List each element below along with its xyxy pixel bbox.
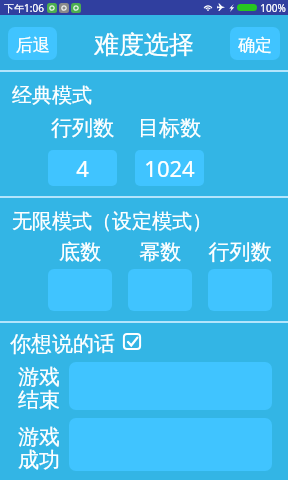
- staticText: 幂数: [128, 239, 192, 265]
- staticText: 游戏 结束: [18, 364, 60, 413]
- staticText: 下午1:06: [4, 1, 44, 15]
- staticText: 确定: [238, 35, 272, 56]
- staticText: 难度选择: [94, 29, 194, 60]
- staticText: 底数: [48, 239, 112, 265]
- staticText: 经典模式: [12, 83, 92, 108]
- button[interactable]: 4: [48, 150, 117, 186]
- staticText: 你想说的话: [10, 331, 115, 357]
- staticText: 4: [76, 153, 89, 183]
- staticText: 目标数: [135, 115, 204, 141]
- staticText: 100%: [260, 1, 286, 15]
- staticText: 后退: [16, 35, 50, 56]
- button[interactable]: 确定: [230, 27, 280, 60]
- staticText: 行列数: [48, 115, 117, 141]
- button[interactable]: Enable custom messages: [122, 331, 142, 351]
- staticText: 游戏 成功: [18, 424, 60, 473]
- staticText: 1024: [144, 153, 195, 183]
- staticText: 无限模式（设定模式）: [12, 209, 212, 234]
- staticText: 行列数: [208, 239, 272, 265]
- button[interactable]: 1024: [135, 150, 204, 186]
- button[interactable]: 后退: [8, 27, 57, 60]
